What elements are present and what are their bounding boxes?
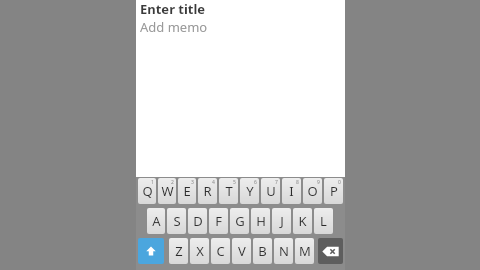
staticText: Add memo — [140, 18, 208, 36]
staticText: 9 — [317, 179, 320, 186]
staticText: 0 — [338, 179, 341, 186]
staticText: A — [152, 212, 161, 230]
staticText: Enter title — [140, 0, 206, 17]
staticText: 2 — [171, 179, 174, 186]
button[interactable]: D — [188, 208, 207, 234]
staticText: I — [289, 182, 294, 200]
staticText: 3 — [191, 179, 194, 186]
button[interactable]: Add memo — [140, 17, 339, 36]
staticText: 6 — [254, 179, 257, 186]
button[interactable]: V — [232, 238, 251, 264]
button[interactable]: Y — [240, 178, 259, 204]
button[interactable]: Z — [169, 238, 188, 264]
button[interactable]: F — [209, 208, 228, 234]
button[interactable]: Q — [138, 178, 156, 204]
staticText: 4 — [212, 179, 215, 186]
staticText: U — [266, 182, 276, 200]
button[interactable]: H — [251, 208, 270, 234]
button[interactable]: K — [293, 208, 312, 234]
staticText: C — [216, 242, 225, 260]
button[interactable]: T — [219, 178, 238, 204]
staticText: E — [183, 182, 191, 200]
button[interactable]: E — [178, 178, 196, 204]
staticText: B — [258, 242, 267, 260]
staticText: K — [298, 212, 307, 230]
staticText: W — [161, 182, 174, 200]
staticText: T — [225, 182, 233, 200]
button[interactable]: A — [147, 208, 165, 234]
staticText: Y — [246, 182, 254, 200]
staticText: G — [235, 212, 245, 230]
staticText: V — [238, 242, 246, 260]
staticText: X — [196, 242, 204, 260]
button[interactable]: O — [303, 178, 322, 204]
staticText: D — [193, 212, 203, 230]
button[interactable]: W — [158, 178, 176, 204]
button[interactable]: N — [274, 238, 293, 264]
button[interactable]: U — [261, 178, 280, 204]
button[interactable]: C — [211, 238, 230, 264]
staticText: R — [203, 182, 212, 200]
staticText: 1 — [151, 179, 154, 186]
button[interactable]: G — [230, 208, 249, 234]
staticText: H — [256, 212, 266, 230]
staticText: N — [279, 242, 289, 260]
staticText: Z — [175, 242, 183, 260]
staticText: Q — [142, 182, 153, 200]
button[interactable]: J — [272, 208, 291, 234]
button[interactable]: Shift — [138, 238, 164, 264]
button[interactable]: M — [295, 238, 314, 264]
button[interactable]: S — [167, 208, 186, 234]
button[interactable]: B — [253, 238, 272, 264]
staticText: M — [299, 242, 311, 260]
button[interactable]: R — [198, 178, 217, 204]
staticText: O — [307, 182, 318, 200]
staticText: 7 — [275, 179, 278, 186]
button[interactable]: X — [190, 238, 209, 264]
button[interactable]: L — [314, 208, 333, 234]
staticText: 8 — [296, 179, 299, 186]
staticText: L — [320, 212, 327, 230]
staticText: P — [330, 182, 338, 200]
button[interactable]: Enter title — [140, 0, 339, 17]
button[interactable]: Backspace — [318, 238, 343, 264]
button[interactable]: I — [282, 178, 301, 204]
staticText: F — [215, 212, 222, 230]
staticText: J — [280, 212, 284, 230]
staticText: 5 — [233, 179, 236, 186]
button[interactable]: P — [324, 178, 343, 204]
staticText: S — [173, 212, 181, 230]
